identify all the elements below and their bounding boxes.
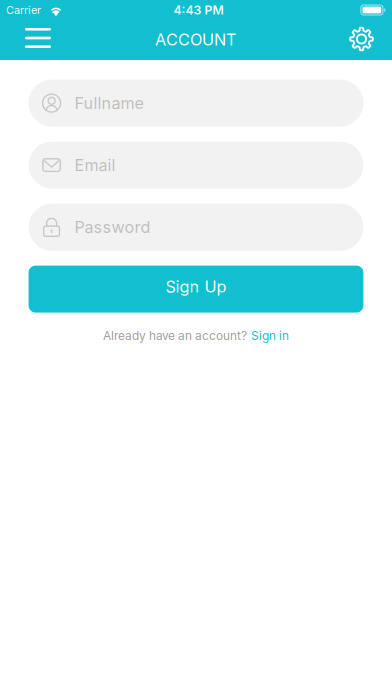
staticText: Sign in	[251, 328, 289, 343]
staticText: Password	[75, 217, 151, 237]
staticText: Sign Up	[165, 277, 226, 296]
button[interactable]: Already have an account?	[29, 328, 363, 344]
staticText: Already have an account?	[103, 328, 247, 343]
button[interactable]: Menu	[6, 20, 70, 60]
button[interactable]: Settings	[328, 20, 392, 60]
staticText: ACCOUNT	[155, 30, 237, 49]
staticText: 4:43 PM	[173, 3, 223, 17]
staticText: Email	[75, 155, 116, 175]
button[interactable]: Sign Up	[29, 266, 363, 313]
staticText: Fullname	[75, 93, 144, 113]
staticText: Carrier	[6, 3, 41, 17]
